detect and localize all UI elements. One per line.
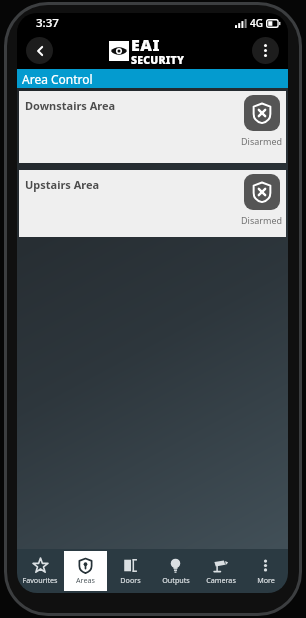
- staticText: More: [257, 575, 275, 585]
- button[interactable]: Doors: [109, 551, 152, 591]
- staticText: Outputs: [162, 575, 190, 585]
- button[interactable]: More: [244, 551, 287, 591]
- staticText: EAI: [131, 34, 160, 56]
- button[interactable]: Cameras: [199, 551, 242, 591]
- button[interactable]: Upstairs Area: [19, 170, 286, 237]
- button[interactable]: Outputs: [154, 551, 197, 591]
- staticText: Disarmed: [241, 214, 282, 226]
- button[interactable]: Arm Downstairs Area: [244, 95, 280, 131]
- button[interactable]: Back: [26, 37, 53, 64]
- staticText: Favourites: [22, 575, 58, 585]
- button[interactable]: Favourites: [18, 551, 62, 591]
- staticText: Doors: [120, 575, 141, 585]
- staticText: Areas: [76, 575, 95, 585]
- staticText: Cameras: [206, 575, 236, 585]
- staticText: 4G: [250, 16, 263, 30]
- staticText: Disarmed: [241, 135, 282, 147]
- button[interactable]: Downstairs Area: [19, 91, 286, 163]
- button[interactable]: Arm Upstairs Area: [244, 174, 280, 210]
- staticText: Area Control: [22, 71, 93, 87]
- button[interactable]: More options: [252, 37, 279, 64]
- button[interactable]: Areas: [64, 551, 107, 591]
- staticText: SECURITY: [131, 53, 185, 67]
- staticText: 3:37: [36, 15, 59, 31]
- staticText: Upstairs Area: [25, 177, 100, 192]
- staticText: Downstairs Area: [25, 98, 116, 113]
